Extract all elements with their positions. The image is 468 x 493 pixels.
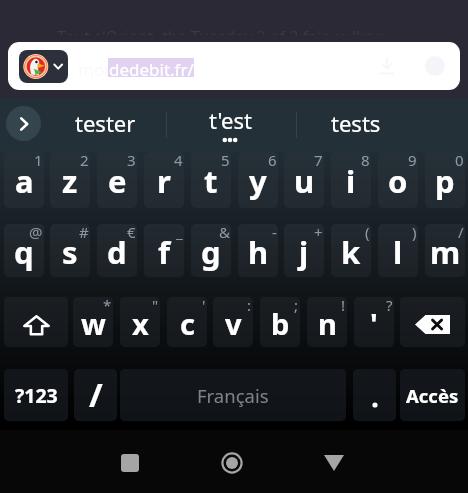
staticText: o (388, 160, 408, 202)
staticText: 5 (221, 152, 230, 170)
staticText: b (271, 304, 290, 343)
button[interactable]: 8 (331, 152, 371, 208)
staticText: q (14, 231, 34, 273)
staticText: h (248, 231, 269, 273)
staticText: @ (29, 224, 43, 242)
staticText: y (249, 160, 267, 202)
button[interactable]: tester (45, 98, 165, 152)
button[interactable]: _ (144, 224, 184, 277)
button[interactable]: Français (120, 369, 346, 421)
button[interactable]: Backspace (400, 297, 465, 347)
button[interactable]: + (284, 224, 324, 277)
staticText: 9 (408, 152, 417, 170)
staticText: * (103, 297, 112, 315)
staticText: w (81, 304, 106, 343)
staticText: ? (386, 297, 393, 315)
staticText: / (89, 372, 103, 417)
staticText: 8 (361, 152, 370, 170)
button[interactable]: 0 (425, 152, 465, 208)
button[interactable]: ( (331, 224, 371, 277)
button[interactable]: ? (354, 297, 394, 347)
staticText: f (158, 231, 170, 273)
staticText: " (152, 297, 159, 315)
staticText: tests (331, 108, 381, 138)
button[interactable]: : (213, 297, 253, 347)
staticText: dedebit.fr/ (109, 58, 194, 77)
button[interactable]: ?123 (4, 369, 68, 421)
staticText: v (225, 304, 242, 343)
staticText: g (201, 231, 221, 273)
button[interactable]: ' (167, 297, 207, 347)
staticText: e (108, 160, 127, 202)
staticText: ( (365, 224, 370, 242)
staticText: 2 (80, 152, 89, 170)
button[interactable]: Period (353, 369, 396, 421)
button[interactable]: 6 (238, 152, 278, 208)
staticText: mon (78, 58, 115, 81)
staticText: - (272, 224, 277, 242)
button[interactable]: Recent apps (106, 439, 154, 487)
button[interactable]: Page actions (376, 42, 460, 90)
staticText: ! (341, 297, 346, 315)
staticText: : (247, 297, 252, 315)
button[interactable]: Back (310, 439, 358, 487)
button[interactable]: 9 (378, 152, 418, 208)
button[interactable]: 3 (97, 152, 137, 208)
staticText: 0 (455, 152, 464, 170)
staticText: tester (75, 108, 136, 138)
staticText: 4 (174, 152, 183, 170)
staticText: Tout s'Orient, the Tuesday 2 of 3 fair p… (57, 29, 384, 35)
button[interactable]: # (50, 224, 90, 277)
staticText: s (62, 231, 78, 273)
staticText: r (157, 160, 171, 202)
button[interactable]: 1 (4, 152, 44, 208)
staticText: # (79, 224, 89, 242)
button[interactable]: € (97, 224, 137, 277)
button[interactable]: " (120, 297, 160, 347)
staticText: l (393, 231, 403, 273)
staticText: a (15, 160, 34, 202)
button[interactable]: Shift (4, 297, 68, 347)
button[interactable]: Accès (400, 369, 465, 421)
staticText: u (294, 160, 315, 202)
button[interactable]: t'est (170, 98, 290, 152)
staticText: / (458, 224, 464, 242)
button[interactable]: * (73, 297, 113, 347)
button[interactable]: ! (307, 297, 347, 347)
staticText: ' (202, 297, 206, 315)
button[interactable]: Change search engine (19, 50, 68, 83)
button[interactable]: ) (378, 224, 418, 277)
button[interactable]: - (238, 224, 278, 277)
staticText: i (346, 160, 356, 202)
button[interactable]: 2 (50, 152, 90, 208)
button[interactable]: 5 (191, 152, 231, 208)
staticText: Français (197, 383, 269, 408)
staticText: Accès (406, 383, 459, 408)
button[interactable]: 7 (284, 152, 324, 208)
button[interactable]: / (425, 224, 465, 277)
staticText: ; (294, 297, 299, 315)
button[interactable]: 4 (144, 152, 184, 208)
staticText: j (299, 231, 309, 273)
staticText: ' (370, 304, 378, 343)
button[interactable]: Home (208, 439, 256, 487)
button[interactable]: / (74, 369, 117, 421)
staticText: ?123 (15, 382, 58, 409)
button[interactable]: @ (4, 224, 44, 277)
button[interactable]: ; (260, 297, 300, 347)
staticText: t'est (209, 105, 252, 135)
staticText: k (341, 231, 361, 273)
button[interactable]: tests (296, 98, 416, 152)
staticText: x (132, 304, 149, 343)
staticText: n (318, 304, 337, 343)
staticText: d (107, 231, 127, 273)
button[interactable]: Change search engine (8, 42, 460, 90)
staticText: + (314, 224, 323, 242)
button[interactable]: More suggestions (6, 106, 41, 141)
staticText: p (435, 160, 455, 202)
staticText: t (204, 160, 218, 202)
button[interactable]: & (191, 224, 231, 277)
staticText: 6 (268, 152, 277, 170)
staticText: m (430, 231, 461, 273)
staticText: 7 (314, 152, 323, 170)
